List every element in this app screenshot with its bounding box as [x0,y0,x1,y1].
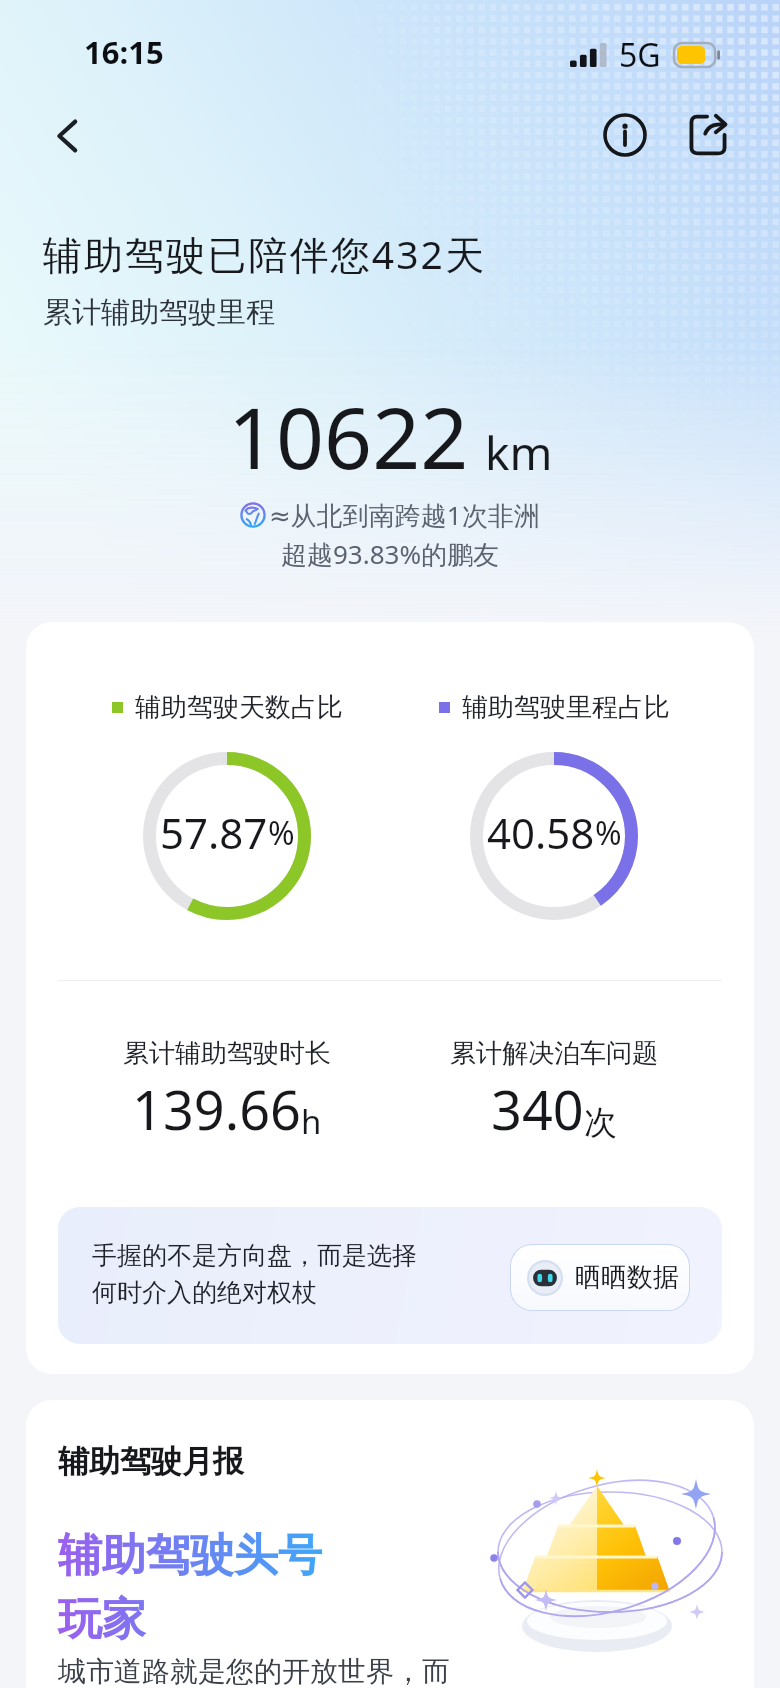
staticText: 辅助驾驶已陪伴您432天 [43,227,487,280]
staticText: 16:15 [84,31,164,73]
staticText: % [268,811,295,855]
staticText: 手握的不是方向盘，而是选择 [92,1240,417,1271]
staticText: 40.58 [487,804,595,861]
staticText: h [301,1099,322,1144]
staticText: ≈从北到南跨越1次非洲 [269,497,540,533]
button[interactable]: 晒晒数据 [511,1245,689,1310]
staticText: 超越93.83%的鹏友 [281,536,500,572]
staticText: 辅助驾驶里程占比 [462,691,670,724]
staticText: 累计辅助驾驶时长 [123,1037,331,1070]
button[interactable]: Back [38,106,98,166]
button[interactable]: 辅助驾驶月报 [26,1400,754,1688]
staticText: 辅助驾驶天数占比 [135,691,343,724]
staticText: 累计解决泊车问题 [450,1037,658,1070]
staticText: 何时介入的绝对权杖 [92,1277,317,1308]
staticText: 辅助驾驶头号 [58,1528,322,1583]
staticText: 辅助驾驶月报 [58,1442,244,1481]
staticText: 57.87 [160,804,268,861]
staticText: 10622 [228,379,469,493]
staticText: % [595,811,622,855]
staticText: 玩家 [58,1592,146,1647]
staticText: 139.66 [132,1072,301,1146]
button[interactable]: Info [594,104,656,166]
staticText: 次 [584,1102,617,1144]
staticText: 340 [491,1072,584,1146]
staticText: km [485,421,553,484]
button[interactable]: Share [677,104,739,166]
staticText: 累计辅助驾驶里程 [43,294,275,331]
staticText: 城市道路就是您的开放世界，而 [58,1654,450,1688]
staticText: 晒晒数据 [575,1261,679,1294]
staticText: 5G [619,33,661,77]
